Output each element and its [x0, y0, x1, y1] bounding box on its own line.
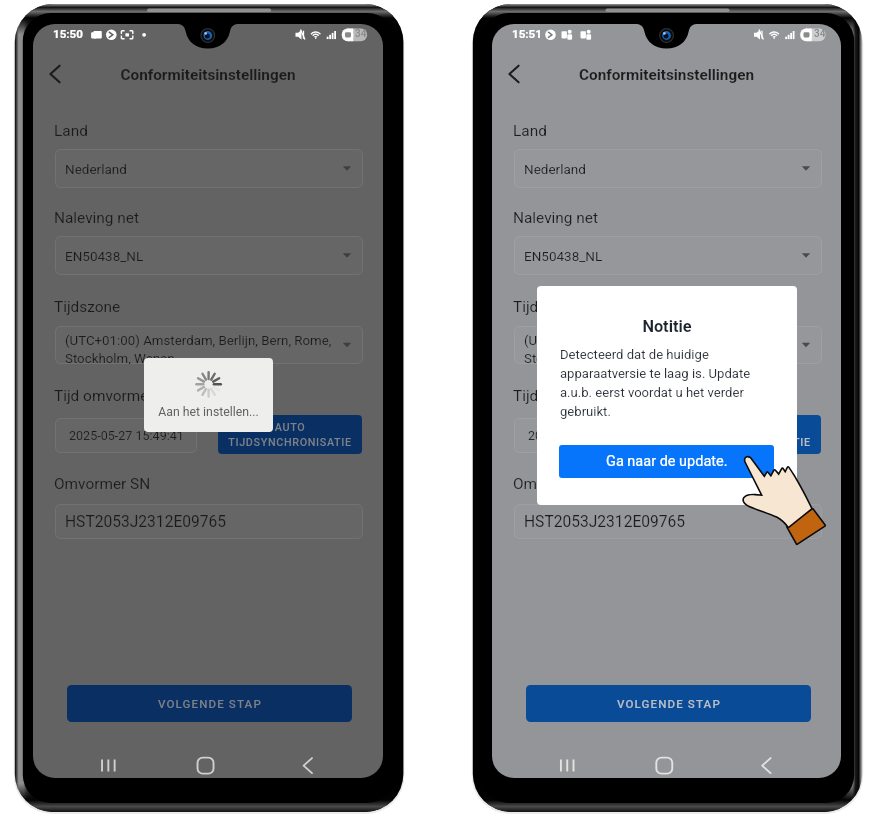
button[interactable]: EN50438_NL: [55, 236, 363, 275]
staticText: Tijdszone: [54, 298, 121, 316]
staticText: Naleving net: [54, 209, 140, 227]
button[interactable]: Terug: [498, 58, 530, 90]
button[interactable]: AUTO TIJDSYNCHRONISATIE: [677, 415, 821, 454]
staticText: Nederland: [524, 161, 586, 177]
staticText: 34: [814, 28, 826, 40]
staticText: VOLGENDE STAP: [158, 697, 262, 711]
staticText: Naleving net: [513, 209, 599, 227]
staticText: Land: [513, 122, 547, 140]
staticText: Tijdszone: [513, 298, 580, 316]
button[interactable]: VOLGENDE STAP: [526, 685, 811, 722]
staticText: Notitie: [537, 317, 797, 336]
staticText: VOLGENDE STAP: [617, 697, 721, 711]
staticText: AUTO TIJDSYNCHRONISATIE: [687, 421, 811, 449]
button[interactable]: HST2053J2312E09765: [55, 504, 363, 539]
staticText: Tijd omvormer: [513, 387, 613, 405]
staticText: HST2053J2312E09765: [524, 513, 686, 531]
button[interactable]: Ga naar de update.: [559, 445, 774, 478]
staticText: 15:50: [53, 27, 83, 41]
staticText: Omvormer SN: [513, 475, 610, 493]
staticText: EN50438_NL: [524, 248, 603, 264]
staticText: Conformiteitsinstellingen: [492, 66, 841, 84]
staticText: Tijd omvormer: [54, 387, 154, 405]
button[interactable]: AUTO TIJDSYNCHRONISATIE: [218, 415, 362, 454]
staticText: EN50438_NL: [65, 248, 144, 264]
staticText: (UTC+01:00) Amsterdam, Berlijn, Bern, Ro…: [65, 333, 332, 364]
staticText: Nederland: [65, 161, 127, 177]
staticText: 15:51: [512, 27, 542, 41]
staticText: 2025-05-27 15:49:41: [528, 428, 643, 443]
staticText: Land: [54, 122, 88, 140]
button[interactable]: Terug: [39, 58, 71, 90]
staticText: HST2053J2312E09765: [65, 513, 227, 531]
button[interactable]: VOLGENDE STAP: [67, 685, 352, 722]
staticText: 34: [355, 28, 367, 40]
button[interactable]: 2025-05-27 15:49:41: [55, 418, 197, 453]
staticText: (UTC+01:00) Amsterdam, Berlijn, Bern, Ro…: [524, 333, 791, 364]
staticText: Conformiteitsinstellingen: [33, 66, 383, 84]
button[interactable]: Nederland: [55, 149, 363, 188]
button[interactable]: Nederland: [514, 149, 822, 188]
staticText: AUTO TIJDSYNCHRONISATIE: [228, 421, 352, 449]
staticText: Ga naar de update.: [606, 453, 728, 470]
staticText: Omvormer SN: [54, 475, 151, 493]
button[interactable]: EN50438_NL: [514, 236, 822, 275]
staticText: Detecteerd dat de huidige apparaatversie…: [560, 347, 751, 419]
staticText: 2025-05-27 15:49:41: [69, 428, 184, 443]
button[interactable]: 2025-05-27 15:49:41: [514, 418, 656, 453]
button[interactable]: (UTC+01:00) Amsterdam, Berlijn, Bern, Ro…: [514, 326, 822, 364]
staticText: Aan het instellen...: [144, 405, 273, 419]
button[interactable]: HST2053J2312E09765: [514, 504, 822, 539]
button[interactable]: (UTC+01:00) Amsterdam, Berlijn, Bern, Ro…: [55, 326, 363, 364]
